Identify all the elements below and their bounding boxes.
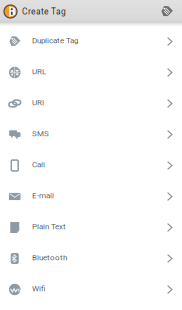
button[interactable]: SMS (0, 119, 182, 150)
button[interactable]: Wifi (0, 274, 182, 305)
staticText: Bluetooth (32, 253, 67, 262)
button[interactable]: URL (0, 57, 182, 88)
staticText: Duplicate Tag (32, 36, 78, 45)
staticText: SMS (32, 129, 49, 138)
staticText: URL (32, 67, 46, 76)
button[interactable]: Bluetooth (0, 243, 182, 274)
button[interactable]: E-mail (0, 181, 182, 212)
button[interactable]: URI (0, 88, 182, 119)
staticText: E-mail (32, 191, 54, 200)
button[interactable]: Call (0, 150, 182, 181)
button[interactable]: New tag (161, 1, 182, 21)
button[interactable]: Duplicate Tag (0, 26, 182, 57)
staticText: Wifi (32, 284, 45, 293)
staticText: Create Tag (22, 6, 66, 16)
button[interactable]: Plain Text (0, 212, 182, 243)
staticText: Plain Text (32, 222, 66, 231)
staticText: URI (32, 98, 44, 107)
staticText: Call (32, 160, 45, 169)
